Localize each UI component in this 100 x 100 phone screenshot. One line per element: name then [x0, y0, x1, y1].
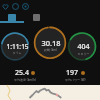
other: Comments: [12, 3, 19, 10]
staticText: 平均速度 (km/h): [14, 78, 36, 82]
button[interactable]: 30.18: [34, 38, 67, 52]
staticText: 197: [66, 68, 79, 78]
staticText: 平均パワー (W): [65, 78, 86, 82]
button[interactable]: Activity tab: [0, 12, 24, 23]
button[interactable]: 404: [67, 42, 100, 56]
staticText: タイム: [12, 51, 22, 55]
staticText: 距離 (km): [44, 48, 57, 52]
staticText: 30.18: [41, 38, 61, 48]
button[interactable]: 1:11:15: [0, 42, 34, 55]
staticText: カロリー: [77, 52, 90, 56]
staticText: 25.4: [15, 68, 29, 78]
other: Share: [22, 3, 29, 10]
button[interactable]: 197: [50, 68, 100, 82]
button[interactable]: 25.4: [0, 68, 50, 82]
staticText: 1:11:15: [6, 42, 29, 51]
button[interactable]: Notes tab: [24, 12, 48, 23]
staticText: 404: [77, 42, 90, 52]
other: Heart rate: [2, 3, 9, 10]
